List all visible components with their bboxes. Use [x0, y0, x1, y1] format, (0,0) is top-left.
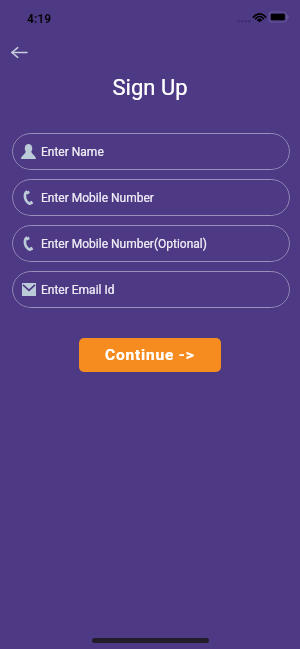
- staticText: Sign Up: [0, 75, 300, 101]
- button[interactable]: Enter Mobile Number(Optional): [12, 225, 290, 262]
- staticText: Enter Email Id: [41, 283, 115, 297]
- button[interactable]: Enter Email Id: [12, 271, 290, 308]
- staticText: 4:19: [27, 12, 52, 26]
- staticText: Enter Name: [41, 145, 104, 159]
- staticText: Enter Mobile Number(Optional): [41, 237, 207, 251]
- staticText: Enter Mobile Number: [41, 191, 154, 205]
- staticText: Continue ->: [105, 346, 195, 364]
- button[interactable]: Enter Name: [12, 133, 290, 170]
- button[interactable]: Continue ->: [79, 338, 221, 372]
- button[interactable]: Back: [7, 40, 31, 64]
- button[interactable]: Enter Mobile Number: [12, 179, 290, 216]
